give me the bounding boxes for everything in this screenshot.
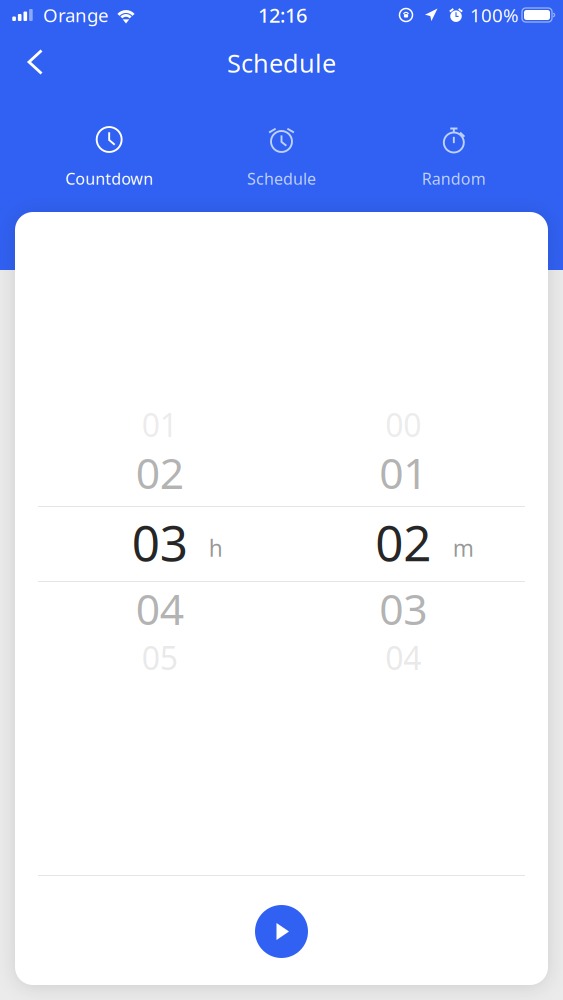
- button[interactable]: Back: [18, 38, 53, 81]
- staticText: 04: [136, 580, 184, 637]
- staticText: Schedule: [247, 168, 316, 189]
- staticText: 12:16: [258, 2, 307, 28]
- staticText: Schedule: [227, 46, 336, 80]
- staticText: h: [209, 533, 223, 563]
- staticText: 04: [385, 636, 421, 679]
- button[interactable]: Countdown: [23, 126, 195, 189]
- staticText: 01: [379, 444, 427, 501]
- staticText: 02: [136, 444, 184, 501]
- staticText: 02: [375, 509, 431, 575]
- staticText: 03: [132, 509, 188, 575]
- staticText: Orange: [43, 3, 109, 27]
- staticText: 01: [142, 403, 178, 446]
- staticText: 00: [385, 403, 421, 446]
- staticText: Countdown: [65, 168, 153, 189]
- staticText: 03: [379, 580, 427, 637]
- button[interactable]: Random: [368, 126, 540, 189]
- staticText: Random: [422, 168, 486, 189]
- staticText: 100%: [470, 3, 519, 27]
- staticText: 05: [142, 636, 178, 679]
- button[interactable]: Schedule: [195, 126, 368, 189]
- staticText: m: [453, 533, 474, 563]
- button[interactable]: Start timer: [255, 905, 308, 958]
